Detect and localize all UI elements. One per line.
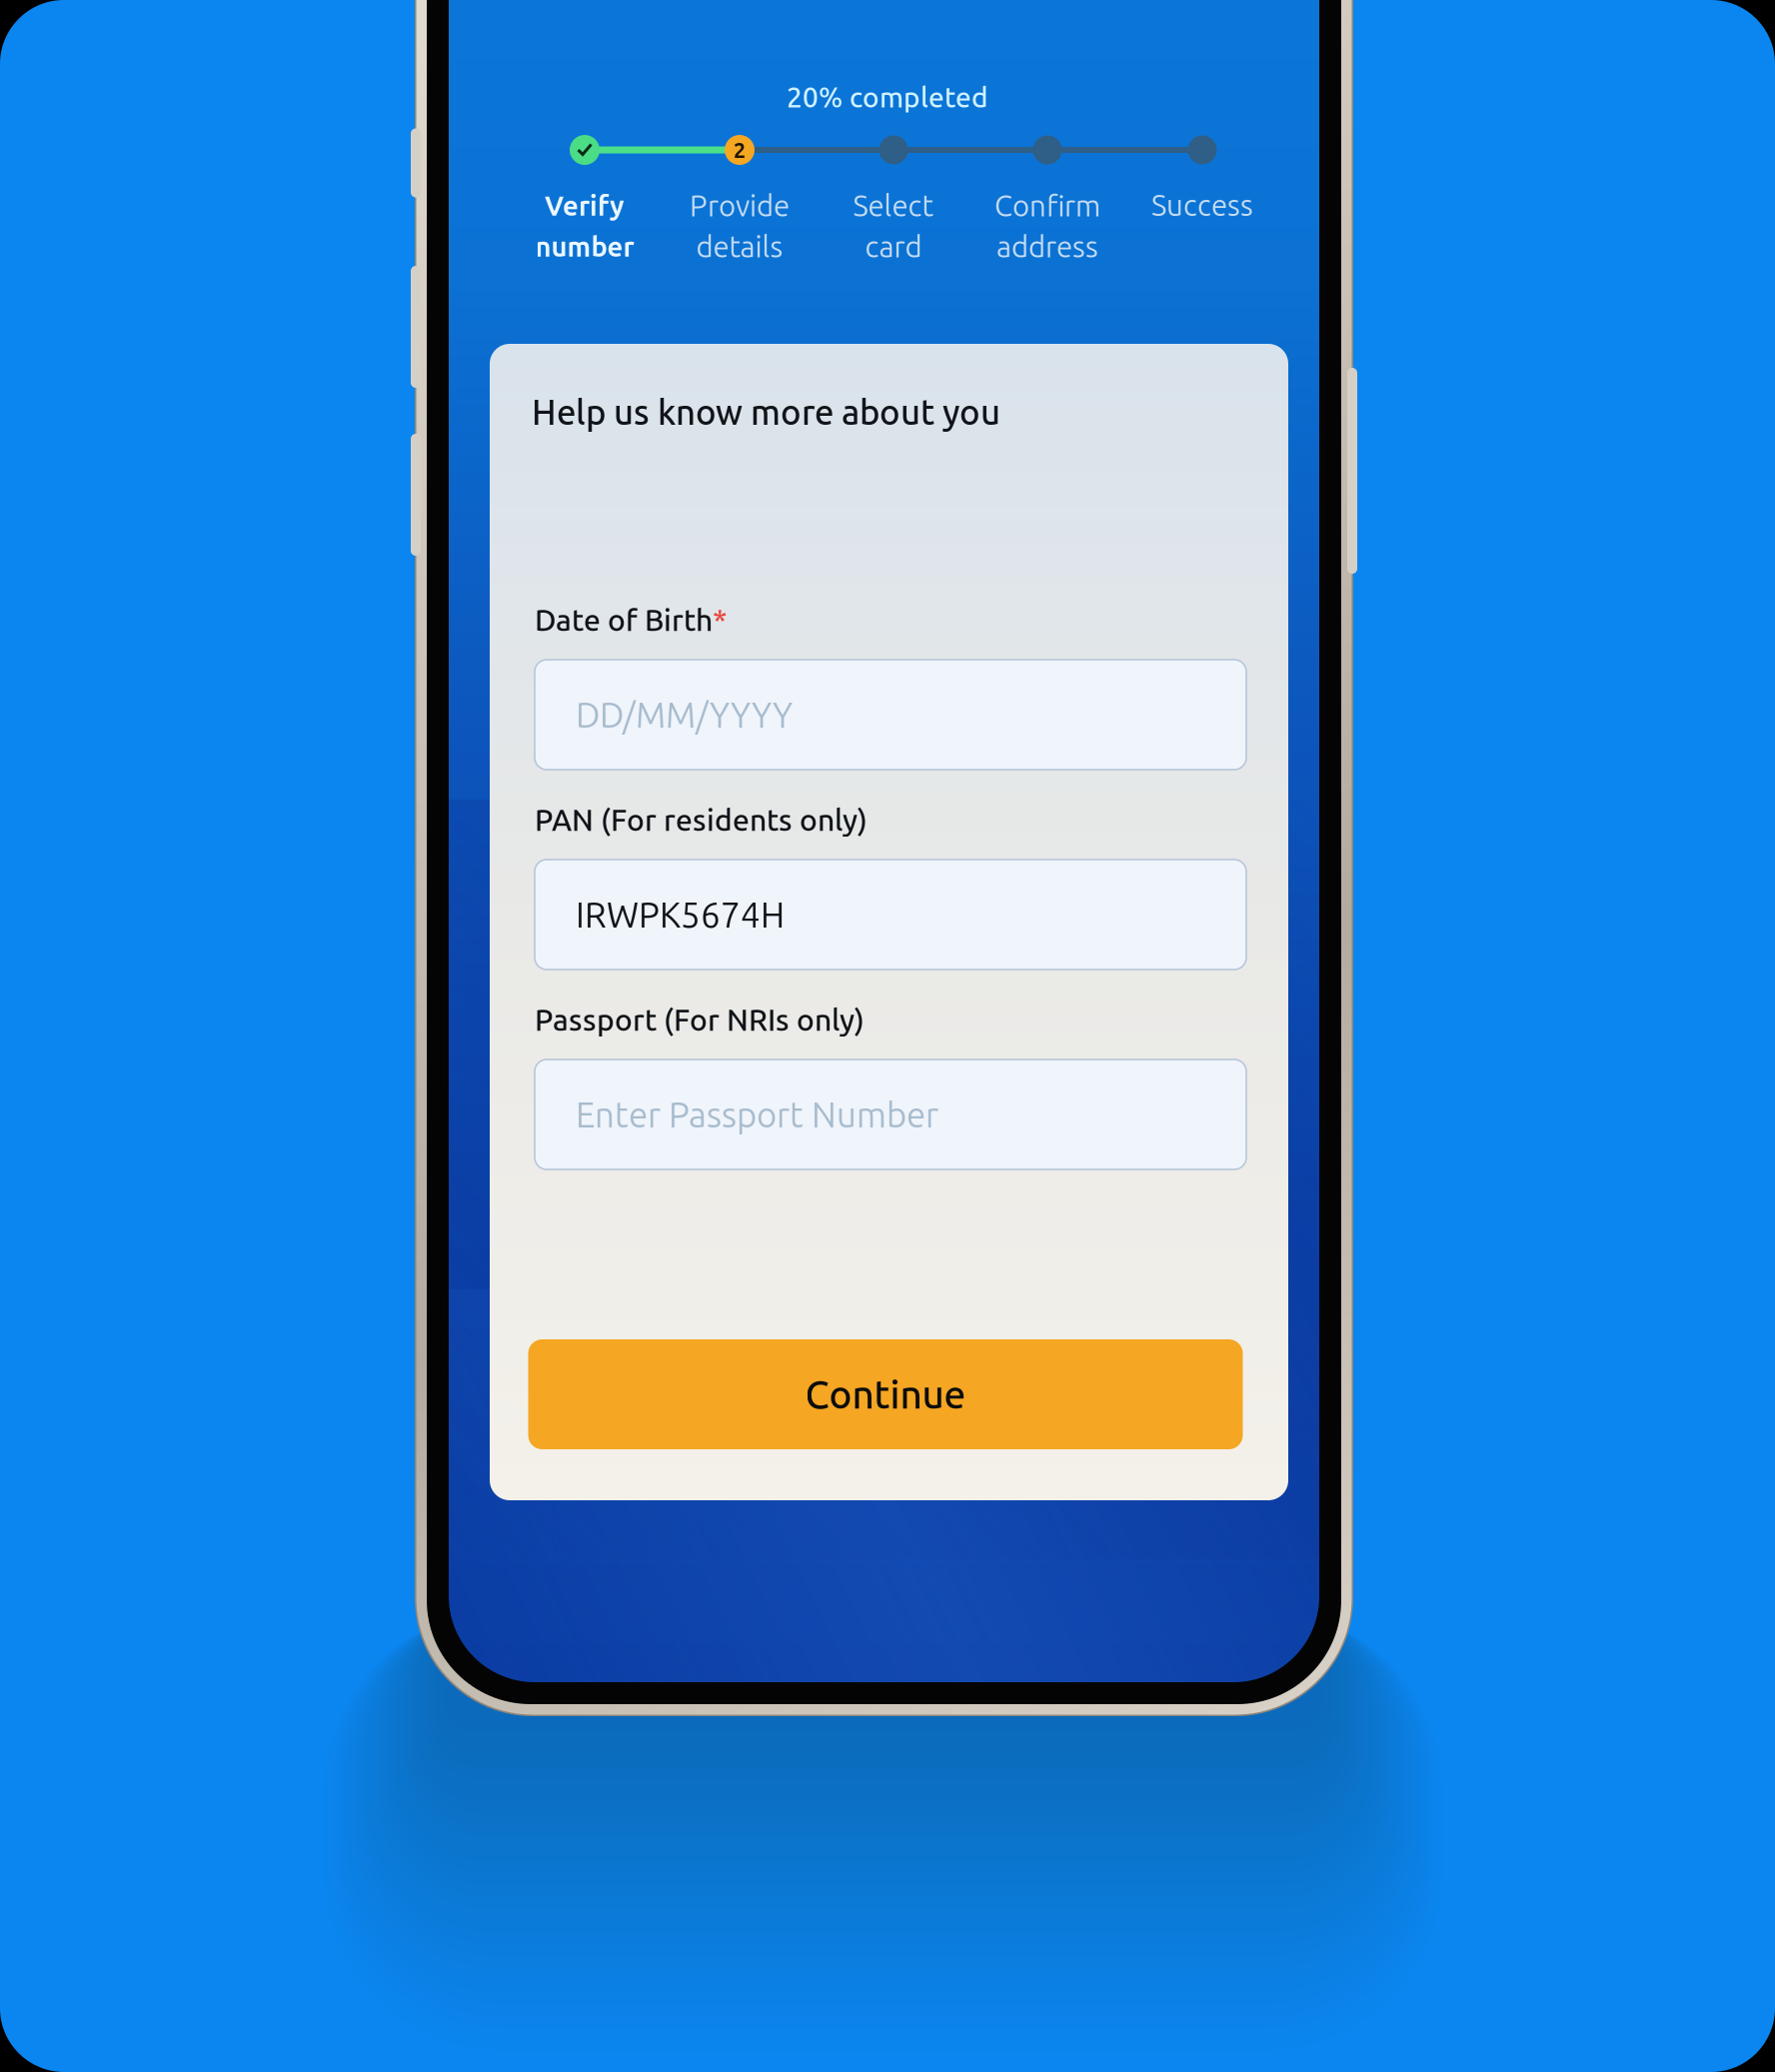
staticText: PAN (For residents only) — [535, 803, 868, 836]
button[interactable]: Confirm — [994, 185, 1100, 267]
staticText: Verify — [545, 190, 625, 221]
button[interactable]: PAN (For residents only) — [535, 800, 1246, 970]
staticText: address — [996, 230, 1098, 263]
staticText: Select — [853, 189, 934, 222]
staticText: details — [696, 230, 783, 263]
staticText: Continue — [805, 1373, 966, 1416]
button[interactable]: Select — [853, 185, 934, 267]
button[interactable]: Verify — [535, 185, 634, 267]
staticText: number — [535, 231, 634, 262]
staticText: Enter Passport Number — [576, 1095, 938, 1134]
staticText: IRWPK5674H — [576, 895, 785, 934]
staticText: Date of Birth — [535, 603, 713, 636]
staticText: card — [865, 230, 922, 263]
button[interactable]: Success — [1151, 184, 1253, 225]
staticText: * — [713, 603, 728, 636]
staticText: Success — [1151, 189, 1253, 221]
staticText: Help us know more about you — [532, 392, 1000, 431]
staticText: 2 — [734, 138, 746, 162]
staticText: 20% completed — [787, 81, 988, 113]
button[interactable]: Passport (For NRIs only) — [535, 1000, 1246, 1169]
staticText: Passport (For NRIs only) — [535, 1003, 865, 1036]
staticText: Provide — [690, 189, 790, 222]
button[interactable]: Continue — [528, 1339, 1243, 1449]
button[interactable]: Provide — [690, 185, 790, 267]
button[interactable]: Date of Birth — [535, 600, 1246, 770]
staticText: DD/MM/YYYY — [576, 695, 793, 734]
staticText: Confirm — [994, 189, 1100, 222]
